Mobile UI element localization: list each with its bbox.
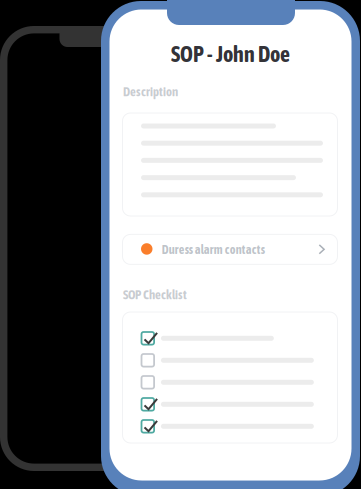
button[interactable] — [141, 420, 325, 433]
staticText: Duress alarm contacts — [162, 242, 265, 257]
staticText: SOP Checklist — [123, 287, 187, 302]
button[interactable] — [141, 398, 325, 411]
button[interactable] — [141, 332, 325, 345]
button[interactable] — [141, 376, 325, 389]
button[interactable] — [141, 354, 325, 367]
button[interactable]: Duress alarm contacts — [122, 234, 338, 265]
staticText: SOP - John Doe — [171, 41, 290, 67]
staticText: Description — [123, 84, 178, 99]
